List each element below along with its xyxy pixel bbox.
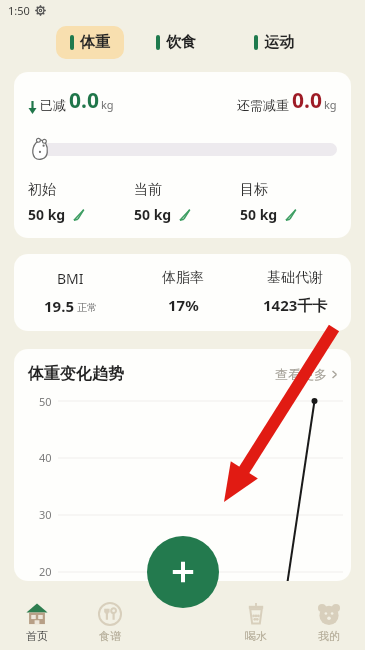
staticText: 饮食 [166,33,196,52]
staticText: 当前 [134,181,162,199]
staticText: 基础代谢 [267,269,323,287]
staticText: BMI [57,269,84,288]
staticText: 体重变化趋势 [28,364,124,384]
button[interactable]: Add record [147,536,219,608]
button[interactable]: 饮食 [142,26,210,59]
staticText: 食谱 [99,629,121,643]
staticText: kg [101,97,114,112]
staticText: 0.0 [292,86,322,115]
staticText: 40 [39,450,52,465]
staticText: 20 [39,564,52,579]
staticText: 喝水 [245,629,267,643]
staticText: 运动 [264,33,294,52]
staticText: 50 kg [134,205,172,224]
button[interactable]: Edit 初始 [72,208,86,222]
button[interactable]: 食谱 [73,595,146,650]
button[interactable]: 查看更多 [271,364,343,384]
button[interactable]: 首页 [0,595,73,650]
staticText: 首页 [26,629,48,643]
staticText: 查看更多 [275,366,327,382]
staticText: 体脂率 [162,269,204,287]
staticText: 已减 [40,97,66,113]
staticText: 30 [39,507,52,522]
staticText: 50 kg [28,205,66,224]
staticText: 0.0 [69,86,99,115]
button[interactable]: BMI [14,254,351,331]
staticText: 50 kg [240,205,278,224]
staticText: 50 [39,394,52,409]
staticText: 正常 [77,301,97,314]
staticText: 体重 [80,33,110,52]
staticText: 19.5 [44,296,74,316]
staticText: 17% [168,295,199,315]
button[interactable]: 喝水 [219,595,292,650]
staticText: 目标 [240,181,268,199]
button[interactable]: 已减 [14,72,351,238]
staticText: 我的 [318,629,340,643]
button[interactable]: 体重 [56,26,124,59]
staticText: 1423千卡 [263,295,328,315]
staticText: 还需减重 [237,97,289,113]
button[interactable]: Edit 目标 [284,208,298,222]
staticText: kg [324,97,337,112]
button[interactable]: 我的 [292,595,365,650]
button[interactable]: 运动 [240,26,308,59]
button[interactable]: Edit 当前 [178,208,192,222]
staticText: 1:50 [8,3,30,18]
staticText: 初始 [28,181,56,199]
